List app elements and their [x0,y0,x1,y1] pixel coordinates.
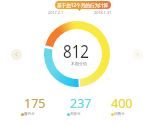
staticText: 基于您12个月的行为计算 [57,2,109,8]
staticText: 237 [70,95,92,112]
button[interactable]: 400 [93,94,141,118]
staticText: 消费分 [114,112,125,117]
button[interactable]: 237 [49,94,97,118]
staticText: 2018.1.31 [94,10,112,15]
staticText: 本期分值 [71,61,87,66]
staticText: 关联分 [70,112,81,117]
staticText: 400 [111,95,133,112]
staticText: 履约分 [24,112,35,117]
button[interactable]: Next period [132,49,143,60]
button[interactable]: 基于您12个月的行为计算 [55,1,111,9]
button[interactable]: Previous period [11,49,22,60]
button[interactable]: 175 [3,94,51,118]
staticText: 175 [24,95,46,112]
staticText: 812 [63,39,89,64]
staticText: 2017.2.1 [48,10,64,15]
